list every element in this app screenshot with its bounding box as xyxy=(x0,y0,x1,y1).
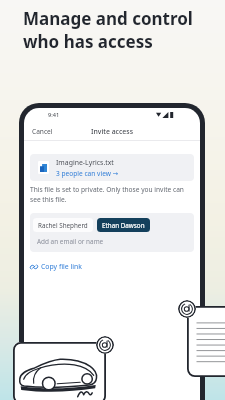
staticText: Rachel Shepherd xyxy=(38,221,88,230)
button[interactable]: Copy file link xyxy=(30,262,83,271)
staticText: Imagine-Lyrics.txt xyxy=(56,158,114,167)
staticText: 3 people can view → xyxy=(56,169,119,178)
button[interactable]: Mention xyxy=(96,336,114,354)
staticText: Cancel xyxy=(32,127,53,136)
button[interactable]: Rachel Shepherd xyxy=(30,213,194,252)
button[interactable]: Imagine-Lyrics.txt xyxy=(30,154,194,181)
staticText: Add an email or name xyxy=(37,237,104,246)
staticText: 9:41 xyxy=(48,111,60,119)
staticText: This file is set to private. Only those … xyxy=(30,185,184,204)
staticText: Copy file link xyxy=(41,262,83,271)
staticText: who has access xyxy=(23,30,153,53)
button[interactable]: Cancel xyxy=(28,124,57,139)
staticText: Invite access xyxy=(91,127,133,136)
button[interactable]: Ethan Dawson xyxy=(97,218,150,232)
button[interactable]: Mention xyxy=(178,300,196,318)
staticText: Ethan Dawson xyxy=(102,221,145,230)
staticText: Manage and control xyxy=(23,7,193,30)
button[interactable]: Rachel Shepherd xyxy=(33,218,93,232)
